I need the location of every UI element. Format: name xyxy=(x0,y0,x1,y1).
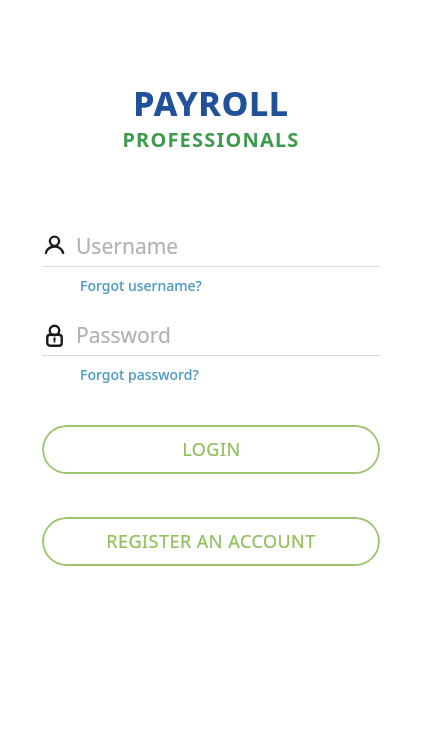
button[interactable]: LOGIN xyxy=(42,425,380,474)
button[interactable]: Username xyxy=(42,229,380,267)
button[interactable]: Password xyxy=(42,318,380,356)
button[interactable]: Forgot password? xyxy=(80,364,199,385)
staticText: LOGIN xyxy=(182,437,241,462)
staticText: PAYROLL xyxy=(133,80,289,126)
staticText: PROFESSIONALS xyxy=(122,126,300,153)
staticText: REGISTER AN ACCOUNT xyxy=(106,529,316,554)
button[interactable]: REGISTER AN ACCOUNT xyxy=(42,517,380,566)
staticText: Password xyxy=(76,321,171,350)
staticText: Username xyxy=(76,232,179,261)
button[interactable]: Forgot username? xyxy=(80,275,202,296)
